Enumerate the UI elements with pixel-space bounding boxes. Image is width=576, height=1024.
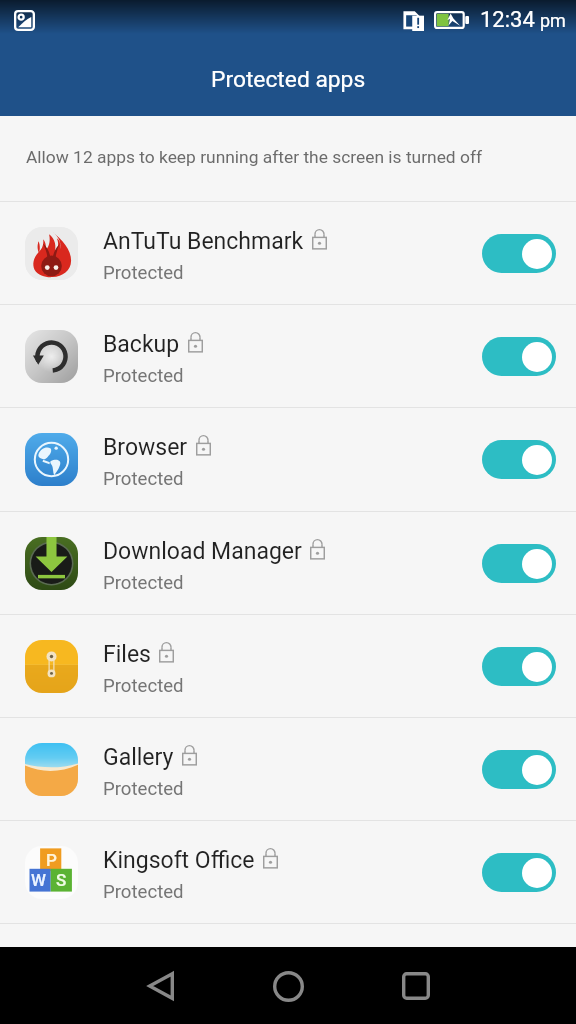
button[interactable]: Download Manager bbox=[0, 512, 576, 615]
staticText: Gallery bbox=[103, 744, 174, 771]
staticText: Files bbox=[103, 641, 151, 668]
staticText: S bbox=[56, 870, 67, 890]
staticText: Protected bbox=[103, 778, 184, 800]
button[interactable]: Back bbox=[126, 952, 194, 1020]
staticText: Protected bbox=[103, 262, 184, 284]
staticText: AnTuTu Benchmark bbox=[103, 228, 304, 255]
button[interactable]: Protection toggle bbox=[482, 853, 556, 892]
staticText: Allow 12 apps to keep running after the … bbox=[26, 147, 483, 167]
button[interactable]: Protection toggle bbox=[482, 440, 556, 479]
staticText: Protected apps bbox=[211, 66, 366, 93]
staticText: Backup bbox=[103, 331, 180, 358]
button[interactable]: Protection toggle bbox=[482, 337, 556, 376]
staticText: pm bbox=[540, 10, 566, 31]
button[interactable]: Protection toggle bbox=[482, 750, 556, 789]
button[interactable]: Protection toggle bbox=[482, 544, 556, 583]
staticText: W bbox=[31, 870, 46, 890]
staticText: Protected bbox=[103, 572, 184, 594]
staticText: Protected bbox=[103, 365, 184, 387]
staticText: Kingsoft Office bbox=[103, 847, 255, 874]
button[interactable]: Backup bbox=[0, 305, 576, 408]
staticText: Protected bbox=[103, 881, 184, 903]
button[interactable]: Files bbox=[0, 615, 576, 718]
button[interactable]: P bbox=[0, 821, 576, 924]
staticText: Download Manager bbox=[103, 538, 302, 565]
button[interactable]: Protection toggle bbox=[482, 647, 556, 686]
button[interactable]: Protection toggle bbox=[482, 234, 556, 273]
staticText: Browser bbox=[103, 434, 188, 461]
staticText: P bbox=[46, 850, 57, 870]
button[interactable]: Browser bbox=[0, 408, 576, 511]
staticText: Protected bbox=[103, 675, 184, 697]
button[interactable]: Gallery bbox=[0, 718, 576, 821]
button[interactable]: AnTuTu Benchmark bbox=[0, 202, 576, 305]
staticText: Protected bbox=[103, 468, 184, 490]
button[interactable]: Recent apps bbox=[382, 952, 450, 1020]
staticText: 12:34 bbox=[480, 7, 535, 33]
button[interactable]: Home bbox=[254, 952, 322, 1020]
